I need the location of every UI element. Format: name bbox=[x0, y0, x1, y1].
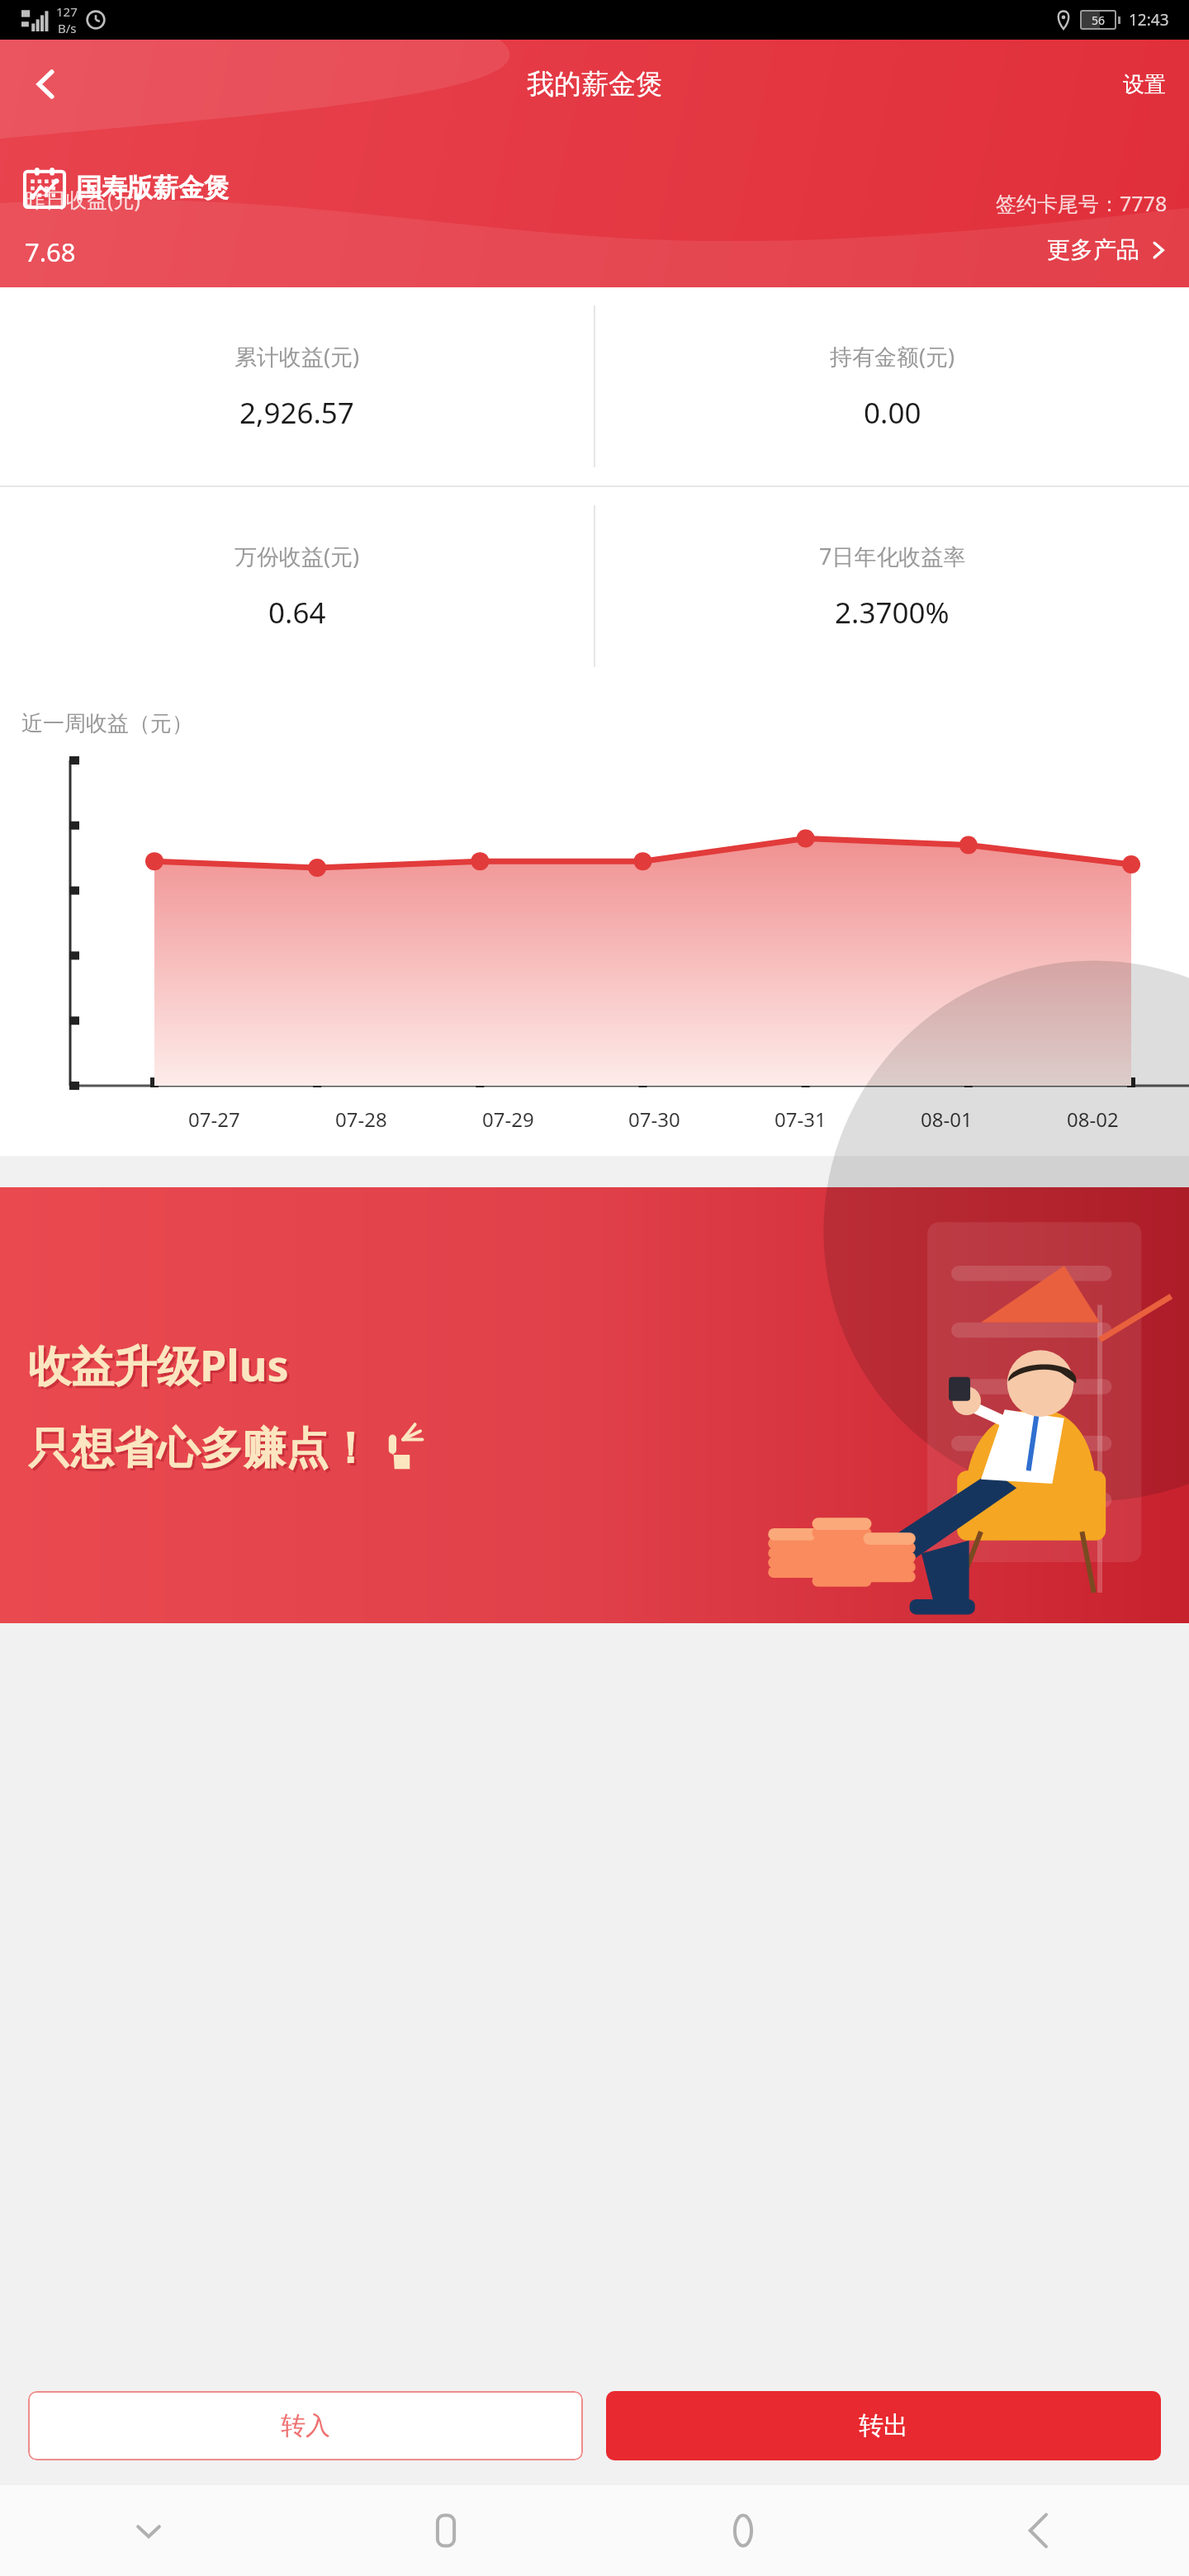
staticText: 56 bbox=[1092, 12, 1106, 28]
staticText: 12:43 bbox=[1129, 9, 1169, 31]
button[interactable]: Back bbox=[8, 46, 84, 122]
staticText: 07-30 bbox=[628, 1106, 680, 1133]
staticText: 7.68 bbox=[25, 234, 76, 269]
button[interactable]: 更多产品 bbox=[1047, 230, 1168, 269]
staticText: 万份收益(元) bbox=[234, 541, 360, 571]
staticText: 昨日收益(元) bbox=[25, 185, 141, 213]
staticText: 0.00 bbox=[864, 393, 921, 433]
staticText: 07-29 bbox=[482, 1106, 534, 1133]
staticText: 签约卡尾号：7778 bbox=[996, 189, 1168, 217]
staticText: 更多产品 bbox=[1047, 235, 1139, 264]
button[interactable]: Back bbox=[892, 2485, 1189, 2576]
button[interactable]: Hide keyboard bbox=[0, 2485, 297, 2576]
staticText: 08-01 bbox=[921, 1106, 973, 1133]
staticText: 07-28 bbox=[335, 1106, 387, 1133]
staticText: 08-02 bbox=[1067, 1106, 1119, 1133]
button[interactable]: 持有金额(元) bbox=[595, 287, 1189, 485]
button[interactable]: 转出 bbox=[606, 2391, 1161, 2460]
button[interactable]: 累计收益(元) bbox=[0, 287, 594, 485]
button[interactable]: 收益升级Plus bbox=[0, 1187, 1189, 1623]
button[interactable]: Home bbox=[594, 2485, 892, 2576]
staticText: 2,926.57 bbox=[239, 393, 354, 433]
staticText: 我的薪金煲 bbox=[527, 67, 663, 102]
staticText: 7日年化收益率 bbox=[819, 541, 966, 571]
button[interactable]: 7日年化收益率 bbox=[595, 487, 1189, 685]
staticText: 收益升级Plus bbox=[31, 1338, 291, 1396]
staticText: 只想省心多赚点！ bbox=[31, 1424, 374, 1479]
staticText: 持有金额(元) bbox=[830, 341, 955, 372]
staticText: 转入 bbox=[281, 2410, 330, 2441]
staticText: 设置 bbox=[1123, 71, 1166, 98]
staticText: 0.64 bbox=[268, 593, 326, 632]
staticText: 近一周收益（元） bbox=[21, 710, 193, 737]
staticText: 07-31 bbox=[775, 1106, 827, 1133]
staticText: 只想省心多赚点！ bbox=[28, 1422, 372, 1476]
staticText: B/s bbox=[58, 20, 77, 36]
staticText: 转出 bbox=[859, 2410, 908, 2441]
button[interactable]: 转入 bbox=[28, 2391, 583, 2460]
button[interactable]: 万份收益(元) bbox=[0, 487, 594, 685]
staticText: 累计收益(元) bbox=[234, 341, 360, 372]
staticText: 收益升级Plus bbox=[28, 1335, 289, 1394]
staticText: 国寿版薪金煲 bbox=[76, 172, 230, 204]
button[interactable]: 设置 bbox=[1100, 54, 1189, 115]
staticText: 07-27 bbox=[188, 1106, 240, 1133]
button[interactable]: Recents bbox=[297, 2485, 594, 2576]
staticText: 2.3700% bbox=[835, 593, 950, 632]
staticText: 127 bbox=[56, 3, 78, 20]
